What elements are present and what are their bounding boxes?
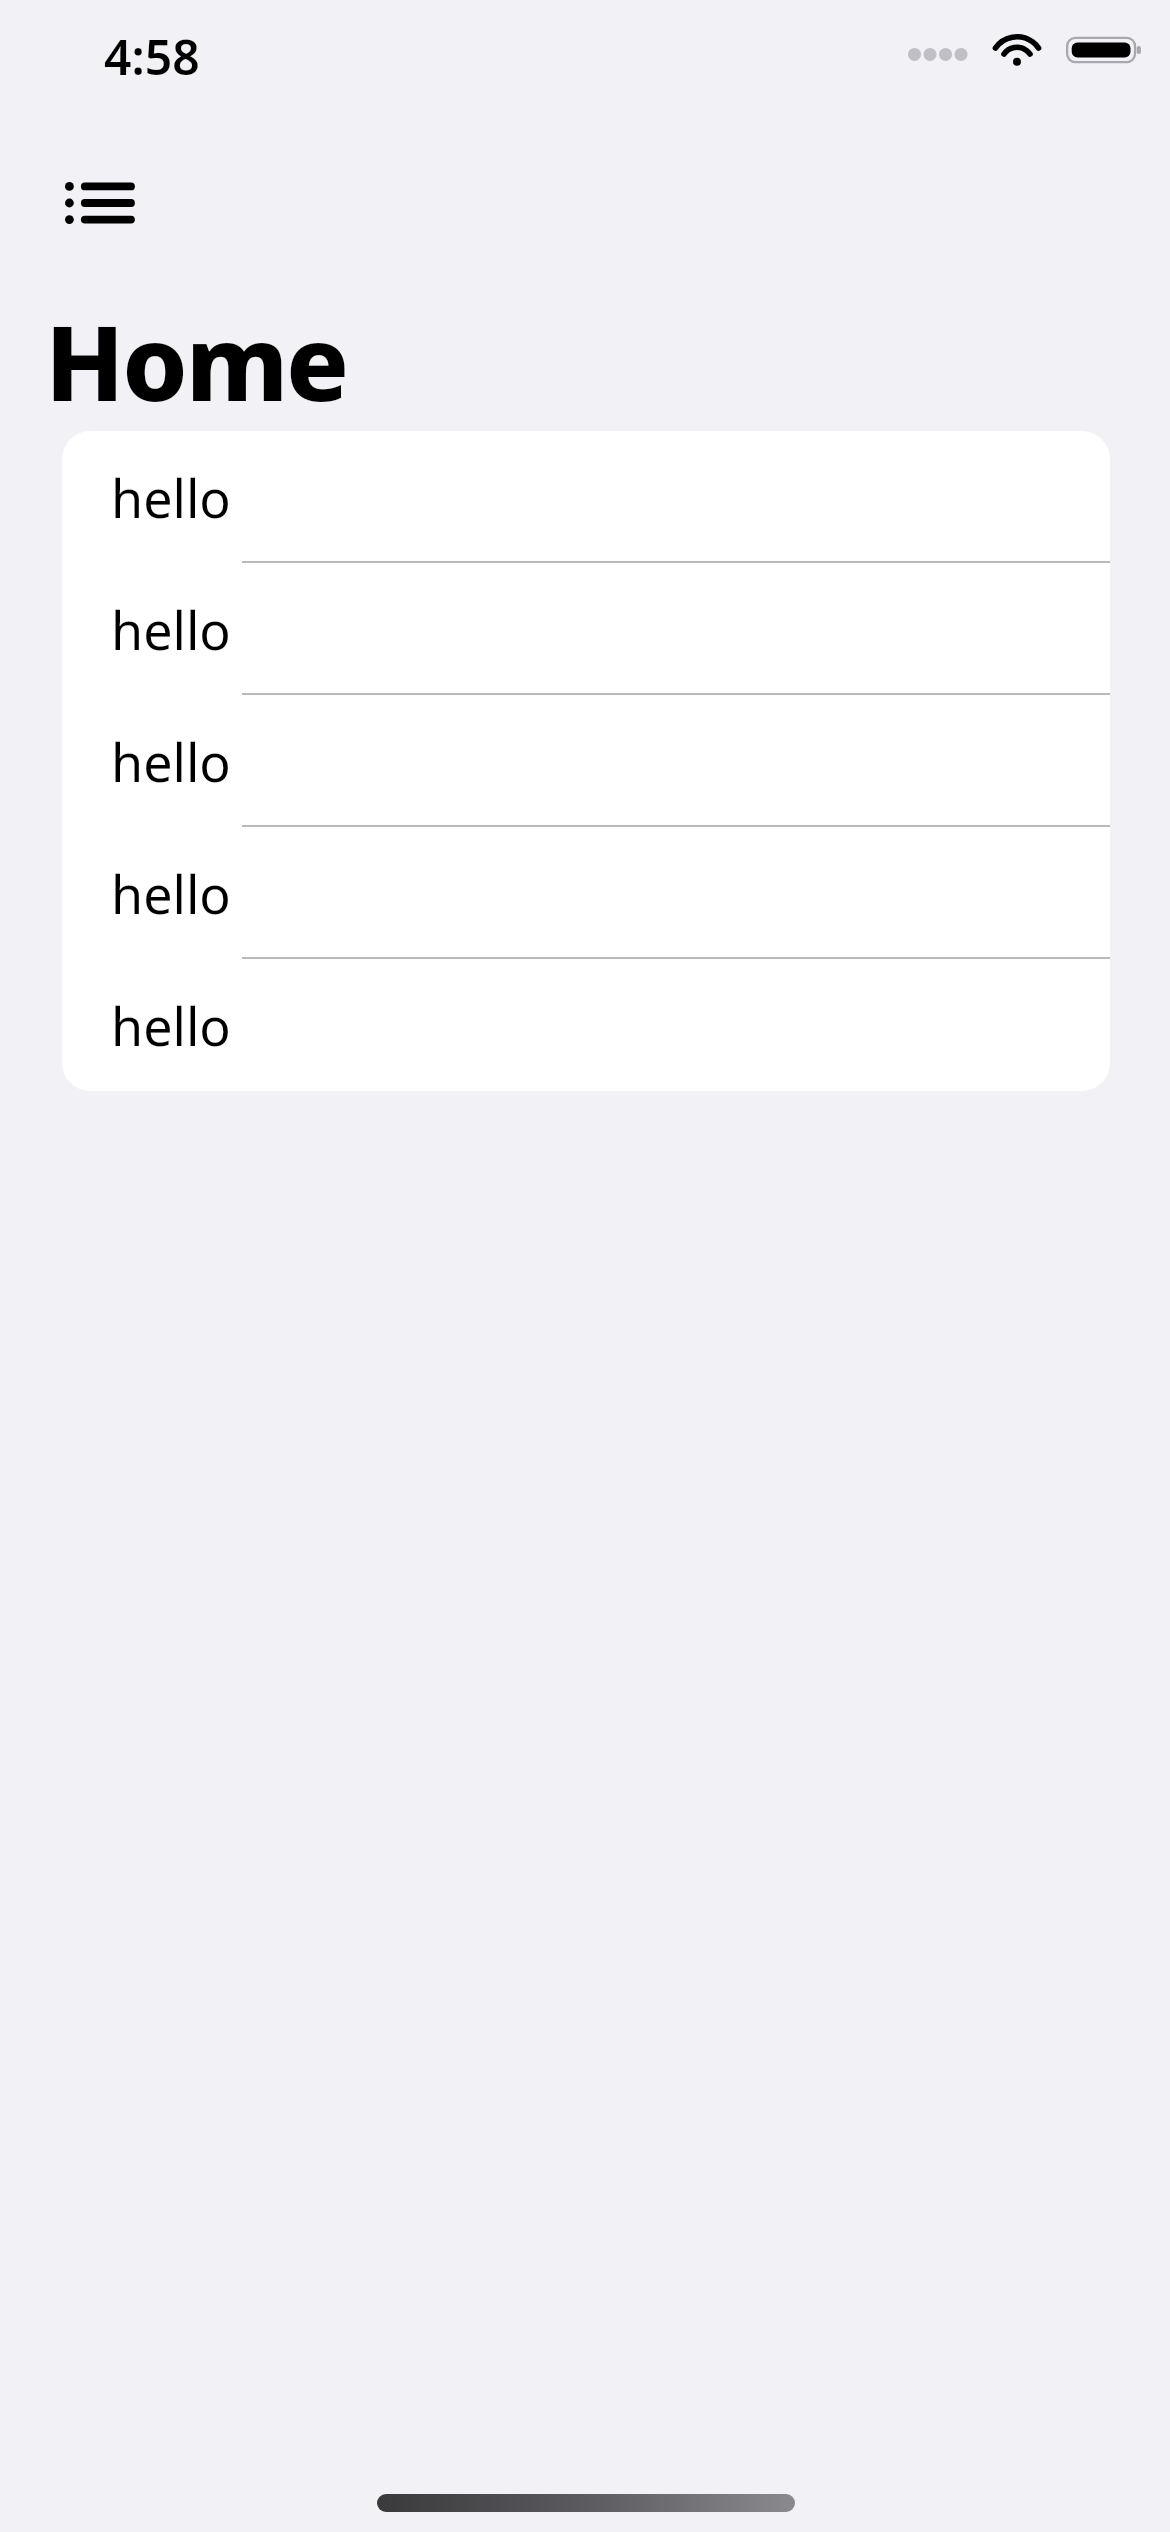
staticText: Home <box>45 290 347 432</box>
button[interactable]: hello <box>62 563 1110 695</box>
staticText: hello <box>111 990 231 1061</box>
staticText: hello <box>111 594 231 665</box>
button[interactable]: hello <box>62 695 1110 827</box>
staticText: hello <box>111 858 231 929</box>
button[interactable]: hello <box>62 431 1110 563</box>
staticText: hello <box>111 726 231 797</box>
button[interactable]: Menu <box>50 172 146 234</box>
button[interactable]: hello <box>62 959 1110 1091</box>
staticText: hello <box>111 462 231 533</box>
button[interactable]: hello <box>62 827 1110 959</box>
staticText: 4:58 <box>104 24 264 89</box>
